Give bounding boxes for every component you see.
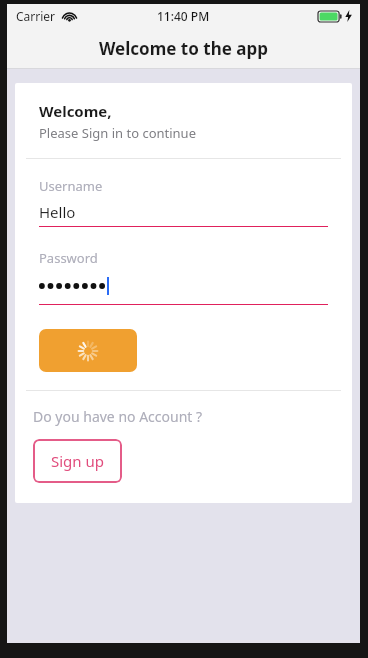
staticText: Do you have no Account ? [33, 407, 203, 426]
staticText: Welcome, [39, 101, 112, 121]
staticText: Carrier [16, 8, 56, 24]
staticText: Welcome to the app [99, 37, 268, 60]
button[interactable]: Sign up [33, 439, 122, 483]
button[interactable]: Sign in, loading [39, 329, 137, 372]
staticText: Username [39, 177, 103, 195]
staticText: Hello [39, 202, 76, 221]
staticText: 11:40 PM [157, 8, 210, 24]
staticText: Please Sign in to continue [39, 124, 196, 142]
staticText: Password [39, 249, 98, 267]
staticText: Sign up [51, 451, 104, 471]
